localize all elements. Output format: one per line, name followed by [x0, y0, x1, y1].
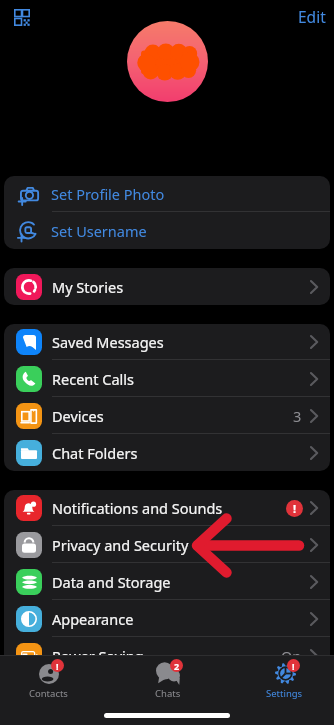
button[interactable]: Chat Folders — [4, 434, 330, 471]
staticText: Set Username — [51, 221, 310, 241]
staticText: Power Saving — [52, 646, 281, 666]
staticText: ! — [292, 660, 295, 672]
button[interactable]: Set Profile Photo — [4, 176, 330, 212]
button[interactable]: Set Username — [4, 212, 330, 249]
staticText: ! — [293, 501, 297, 516]
staticText: Notifications and Sounds — [52, 498, 286, 518]
button[interactable]: My Stories — [4, 268, 330, 305]
staticText: Devices — [52, 406, 293, 426]
staticText: Edit — [298, 6, 326, 27]
button[interactable]: Notifications and Sounds — [4, 490, 330, 526]
button[interactable]: Devices — [4, 397, 330, 434]
staticText: Contacts — [29, 687, 68, 700]
staticText: Appearance — [52, 609, 310, 629]
button[interactable]: Power Saving — [4, 637, 330, 674]
button[interactable]: ! — [8, 662, 89, 700]
button[interactable]: Saved Messages — [4, 324, 330, 360]
staticText: Saved Messages — [52, 332, 310, 352]
staticText: Privacy and Security — [52, 535, 310, 555]
staticText: Data and Storage — [52, 572, 310, 592]
button[interactable]: Recent Calls — [4, 360, 330, 397]
staticText: Set Profile Photo — [51, 184, 310, 204]
staticText: 3 — [293, 406, 302, 426]
button[interactable]: 2 — [127, 662, 208, 700]
staticText: Chat Folders — [52, 443, 310, 463]
button[interactable]: Privacy and Security — [4, 526, 330, 563]
button[interactable]: ! — [244, 662, 325, 700]
button[interactable]: Profile photo — [127, 21, 208, 102]
button[interactable]: Appearance — [4, 600, 330, 637]
staticText: ! — [56, 660, 59, 672]
button[interactable]: Edit — [298, 6, 326, 27]
staticText: Recent Calls — [52, 369, 310, 389]
button[interactable]: Data and Storage — [4, 563, 330, 600]
staticText: 2 — [174, 660, 180, 672]
button[interactable]: Scan QR code — [8, 3, 36, 31]
staticText: Settings — [266, 687, 303, 700]
staticText: Chats — [155, 687, 181, 700]
staticText: My Stories — [52, 277, 310, 297]
staticText: On — [281, 646, 302, 666]
